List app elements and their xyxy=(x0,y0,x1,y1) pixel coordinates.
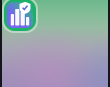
button[interactable]: App icon xyxy=(2,0,38,33)
